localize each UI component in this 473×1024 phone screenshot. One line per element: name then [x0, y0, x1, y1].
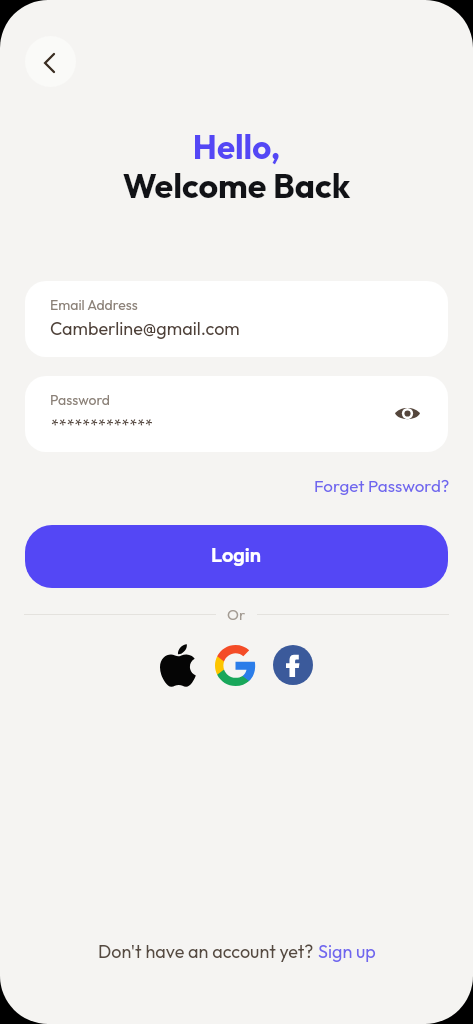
- staticText: Welcome Back: [0, 164, 473, 207]
- button[interactable]: Email Address: [25, 281, 448, 357]
- staticText: Email Address: [50, 296, 138, 314]
- button[interactable]: Continue with Apple: [151, 639, 203, 691]
- staticText: *************: [51, 415, 153, 435]
- button[interactable]: Password: [25, 376, 448, 452]
- staticText: Camberline@gmail.com: [50, 317, 240, 340]
- staticText: Password: [50, 391, 110, 409]
- button[interactable]: Back: [25, 36, 76, 87]
- staticText: Hello,: [0, 126, 473, 168]
- button[interactable]: Continue with Google: [209, 639, 261, 691]
- button[interactable]: Show password: [389, 395, 426, 432]
- staticText: Or: [227, 605, 246, 624]
- staticText: Don't have an account yet?: [98, 940, 318, 963]
- staticText: Login: [211, 542, 262, 567]
- button[interactable]: Sign up: [318, 940, 376, 963]
- button[interactable]: Continue with Facebook: [267, 639, 319, 691]
- staticText: Forget Password?: [314, 475, 450, 496]
- button[interactable]: Login: [25, 525, 448, 588]
- button[interactable]: Forget Password?: [302, 470, 450, 500]
